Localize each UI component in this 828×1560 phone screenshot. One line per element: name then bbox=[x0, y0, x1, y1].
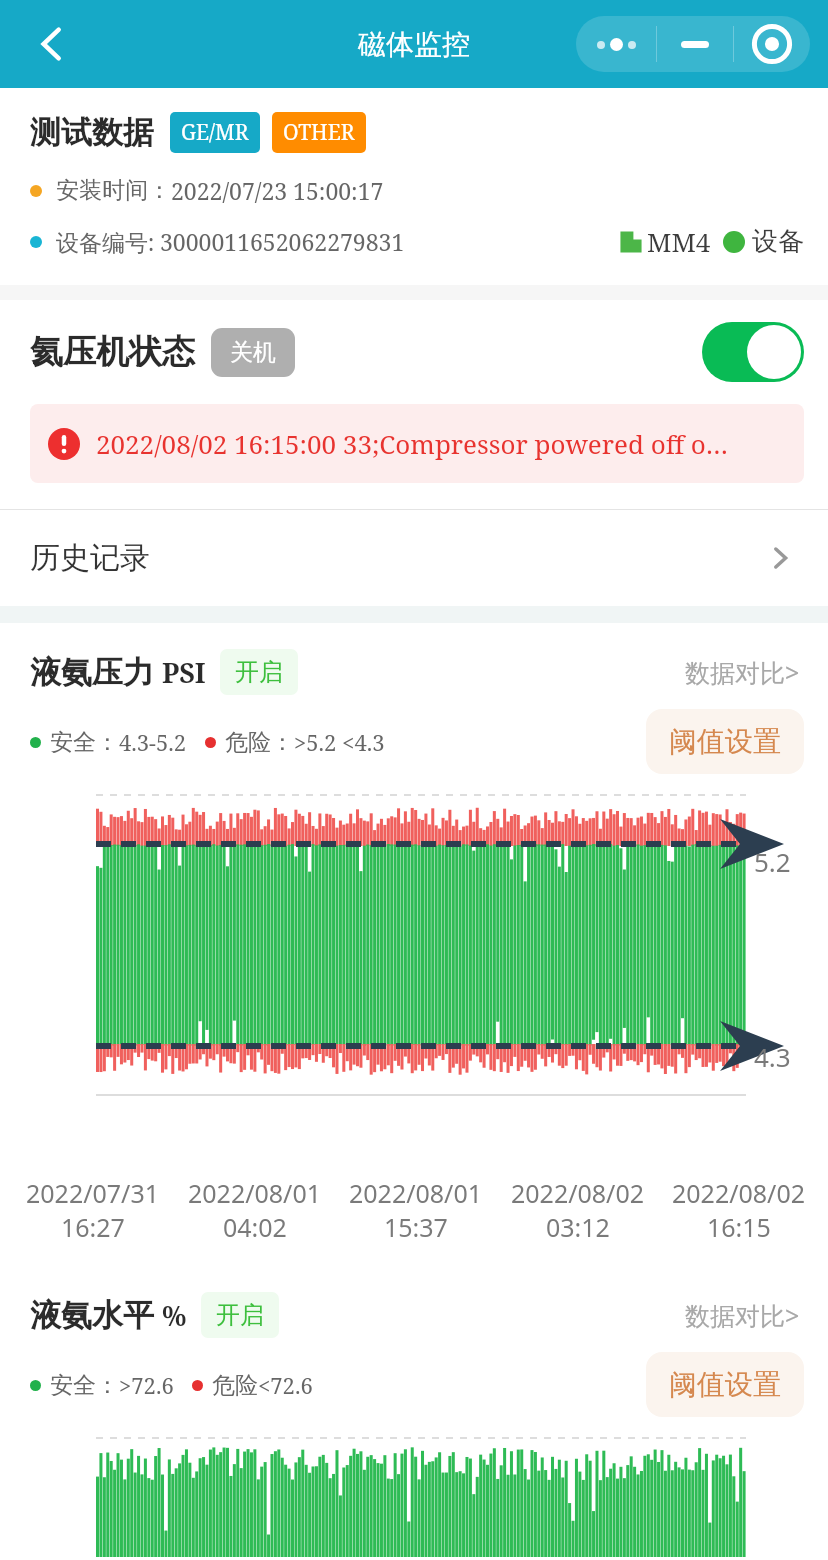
staticText: OTHER bbox=[283, 118, 355, 147]
button[interactable]: Back bbox=[20, 12, 84, 76]
staticText: 开启 bbox=[235, 657, 283, 687]
button[interactable]: OTHER bbox=[272, 112, 366, 153]
staticText: 2022/07/23 15:00:17 bbox=[171, 175, 384, 206]
staticText: 2022/08/02 16:15:00 33;Compressor powere… bbox=[96, 426, 729, 461]
staticText: >72.6 bbox=[119, 1370, 174, 1400]
staticText: 设备 bbox=[752, 225, 804, 258]
staticText: 安全： bbox=[50, 1371, 119, 1400]
button[interactable]: More bbox=[576, 16, 656, 72]
staticText: MM4 bbox=[647, 224, 711, 259]
staticText: 2022/07/31 bbox=[26, 1176, 160, 1210]
button[interactable]: 关机 bbox=[211, 328, 295, 377]
staticText: PSI bbox=[162, 654, 206, 691]
staticText: 危险 bbox=[212, 1371, 258, 1400]
staticText: 危险： bbox=[225, 728, 294, 757]
staticText: >5.2 <4.3 bbox=[294, 727, 385, 757]
staticText: 4.3 bbox=[754, 1039, 791, 1074]
staticText: 16:15 bbox=[707, 1210, 771, 1244]
staticText: 安全： bbox=[50, 728, 119, 757]
button[interactable]: 数据对比> bbox=[681, 651, 804, 693]
staticText: 16:27 bbox=[61, 1210, 125, 1244]
staticText: % bbox=[162, 1297, 187, 1334]
button[interactable]: Power toggle bbox=[702, 322, 804, 382]
staticText: 数据对比> bbox=[685, 655, 800, 689]
staticText: 液氨水平 bbox=[30, 1296, 154, 1335]
staticText: 历史记录 bbox=[30, 539, 150, 577]
staticText: 阈值设置 bbox=[669, 724, 781, 759]
staticText: 2022/08/02 bbox=[672, 1176, 806, 1210]
staticText: 液氨压力 bbox=[30, 653, 154, 692]
staticText: 设备编号: bbox=[56, 226, 155, 257]
staticText: 数据对比> bbox=[685, 1298, 800, 1332]
staticText: 04:02 bbox=[223, 1210, 287, 1244]
staticText: 阈值设置 bbox=[669, 1367, 781, 1402]
staticText: 5.2 bbox=[754, 844, 791, 879]
staticText: 氦压机状态 bbox=[30, 331, 195, 373]
button[interactable]: 阈值设置 bbox=[646, 1352, 804, 1417]
button[interactable]: 开启 bbox=[201, 1292, 279, 1338]
staticText: 测试数据 bbox=[30, 113, 154, 152]
button[interactable]: 阈值设置 bbox=[646, 709, 804, 774]
button[interactable]: GE/MR bbox=[170, 112, 260, 153]
button[interactable]: 2022/08/02 16:15:00 33;Compressor powere… bbox=[30, 404, 804, 483]
staticText: 磁体监控 bbox=[358, 27, 470, 62]
staticText: 安装时间： bbox=[56, 176, 171, 205]
button[interactable]: 开启 bbox=[220, 649, 298, 695]
staticText: 3000011652062279831 bbox=[160, 226, 405, 257]
button[interactable]: 数据对比> bbox=[681, 1294, 804, 1336]
staticText: <72.6 bbox=[258, 1370, 313, 1400]
staticText: 2022/08/02 bbox=[511, 1176, 645, 1210]
staticText: 4.3-5.2 bbox=[119, 727, 187, 757]
button[interactable]: Minimize bbox=[657, 16, 733, 72]
staticText: 关机 bbox=[230, 338, 276, 367]
staticText: 开启 bbox=[216, 1300, 264, 1330]
button[interactable]: Target bbox=[734, 16, 810, 72]
staticText: GE/MR bbox=[181, 118, 249, 147]
staticText: 2022/08/01 bbox=[349, 1176, 483, 1210]
staticText: 2022/08/01 bbox=[188, 1176, 322, 1210]
button[interactable]: 历史记录 bbox=[0, 510, 828, 606]
staticText: 15:37 bbox=[384, 1210, 448, 1244]
staticText: 03:12 bbox=[546, 1210, 610, 1244]
